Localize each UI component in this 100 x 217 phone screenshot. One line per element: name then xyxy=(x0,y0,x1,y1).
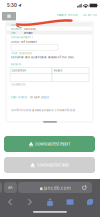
staticText: Sensitive and quantitative analysis of t… xyxy=(11,56,74,59)
button[interactable]: Bookmarks xyxy=(60,196,80,208)
staticText: Result xyxy=(54,69,63,72)
button[interactable]: jancdb.com xyxy=(18,182,92,193)
staticText: Serial Number 1 xyxy=(11,36,33,39)
staticText: Rover xyxy=(24,23,32,26)
button[interactable]: Page settings xyxy=(4,182,17,193)
staticText: Test required xyxy=(11,52,32,55)
button[interactable]: Back xyxy=(0,196,20,208)
staticText: Sex xyxy=(11,31,15,34)
staticText: Serial xyxy=(11,23,19,26)
staticText: Date tested: xyxy=(11,96,28,99)
staticText: 283446 xyxy=(24,27,36,30)
staticText: Female xyxy=(24,31,33,34)
staticText: jancdb.com xyxy=(44,185,71,191)
staticText: 13 SEP 2023 xyxy=(30,96,49,99)
button[interactable]: Download test report xyxy=(4,136,95,152)
button[interactable]: Download test data xyxy=(4,157,95,173)
button[interactable]: Forward xyxy=(20,196,40,208)
button[interactable]: Share xyxy=(40,196,60,208)
staticText: Results xyxy=(11,63,21,66)
staticText: Sample record · 20 BY 23 xyxy=(57,13,97,16)
staticText: Download test data xyxy=(36,163,68,167)
button[interactable]: Tabs xyxy=(80,196,100,208)
staticText: 5:30 xyxy=(7,3,17,8)
staticText: Number xyxy=(11,27,22,30)
staticText: Verify this test at www.possible.com/ver… xyxy=(11,109,75,112)
staticText: aA xyxy=(8,185,13,190)
staticText: Download test report xyxy=(35,142,70,146)
staticText: Clinic ref number xyxy=(11,40,37,43)
staticText: Comments xyxy=(11,83,25,86)
staticText: Condition xyxy=(12,69,27,72)
